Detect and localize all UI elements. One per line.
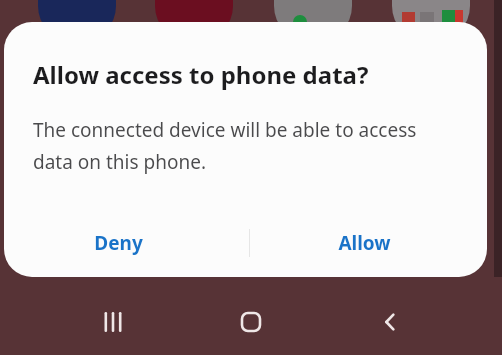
- button[interactable]: Deny: [4, 215, 245, 271]
- staticText: Allow: [338, 230, 391, 256]
- button[interactable]: Allow: [245, 215, 487, 271]
- button[interactable]: Recent apps: [83, 292, 143, 352]
- staticText: The connected device will be able to acc…: [33, 117, 452, 175]
- button[interactable]: Home: [221, 292, 281, 352]
- staticText: Deny: [94, 230, 143, 256]
- staticText: Allow access to phone data?: [33, 58, 369, 91]
- button[interactable]: Back: [360, 292, 420, 352]
